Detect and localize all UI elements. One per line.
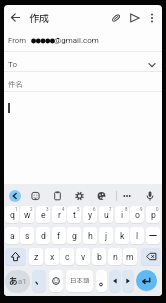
button[interactable] (141, 248, 161, 265)
button[interactable] (136, 270, 157, 291)
staticText: あ (9, 275, 18, 288)
button[interactable]: h (83, 227, 97, 244)
button[interactable] (9, 190, 21, 202)
button[interactable]: e (36, 206, 50, 223)
staticText: 1 (15, 207, 18, 212)
staticText: 日本語 (70, 276, 90, 286)
staticText: f (57, 231, 61, 241)
button[interactable] (146, 11, 158, 25)
button[interactable] (52, 190, 63, 202)
button[interactable]: d (36, 227, 50, 244)
button[interactable] (4, 30, 162, 51)
staticText: x (50, 252, 55, 262)
staticText: 作成 (29, 11, 49, 26)
button[interactable]: n (108, 248, 122, 265)
button[interactable]: v (76, 248, 90, 265)
staticText: 8 (125, 207, 128, 212)
staticText: v (81, 252, 86, 262)
button[interactable] (128, 11, 141, 25)
staticText: c (65, 252, 70, 262)
button[interactable] (145, 58, 159, 72)
button[interactable]: g (67, 227, 81, 244)
staticText: q (10, 210, 15, 220)
button[interactable]: m (123, 248, 137, 265)
staticText: b (97, 252, 102, 262)
staticText: 件名 (8, 79, 23, 90)
button[interactable]: a (5, 227, 19, 244)
staticText: g (72, 231, 77, 241)
button[interactable] (5, 248, 26, 265)
button[interactable]: w (20, 206, 34, 223)
staticText: s (25, 231, 30, 241)
button[interactable] (30, 190, 41, 202)
button[interactable] (122, 270, 134, 292)
button[interactable] (4, 71, 162, 91)
button[interactable]: y (83, 206, 97, 223)
staticText: 9 (140, 207, 143, 212)
button[interactable] (49, 270, 63, 292)
button[interactable]: i (115, 206, 129, 223)
staticText: 2 (30, 207, 33, 212)
staticText: 4 (62, 207, 65, 212)
staticText: To (8, 60, 17, 69)
button[interactable] (8, 10, 23, 25)
staticText: 3 (46, 207, 49, 212)
button[interactable]: q (5, 206, 19, 223)
staticText: 7 (109, 207, 112, 212)
button[interactable] (109, 11, 123, 25)
staticText: w (24, 210, 31, 220)
button[interactable]: f (52, 227, 66, 244)
button[interactable] (74, 190, 85, 202)
button[interactable] (109, 270, 121, 292)
staticText: j (105, 231, 108, 241)
staticText: 0 (156, 207, 159, 212)
staticText: From (8, 36, 27, 45)
button[interactable] (144, 190, 156, 202)
button[interactable]: b (92, 248, 106, 265)
staticText: o (135, 210, 140, 220)
button[interactable] (146, 227, 160, 244)
staticText: d (41, 231, 46, 241)
button[interactable]: x (45, 248, 59, 265)
button[interactable]: s (20, 227, 34, 244)
button[interactable]: u (99, 206, 113, 223)
staticText: n (113, 252, 118, 262)
button[interactable] (4, 91, 162, 184)
staticText: a (10, 231, 15, 241)
button[interactable]: z (29, 248, 43, 265)
button[interactable]: 日本語 (66, 270, 93, 292)
staticText: h (88, 231, 93, 241)
button[interactable] (96, 190, 107, 202)
button[interactable]: k (115, 227, 129, 244)
button[interactable]: r (52, 206, 66, 223)
button[interactable] (4, 51, 162, 71)
button[interactable] (121, 190, 133, 202)
staticText: k (120, 231, 125, 241)
staticText: p (151, 210, 156, 220)
staticText: 6 (93, 207, 96, 212)
button[interactable]: あ (5, 270, 30, 292)
staticText: z (34, 252, 39, 262)
staticText: r (58, 210, 61, 220)
button[interactable]: t (67, 206, 81, 223)
staticText: m (126, 252, 134, 262)
button[interactable]: l (130, 227, 144, 244)
staticText: y (88, 210, 93, 220)
staticText: e (41, 210, 46, 220)
staticText: @gmail.com (54, 36, 99, 45)
staticText: l (136, 231, 139, 241)
staticText: i (121, 210, 124, 220)
staticText: u (104, 210, 109, 220)
button[interactable]: o (130, 206, 144, 223)
staticText: t (73, 210, 76, 220)
staticText: 5 (77, 207, 80, 212)
button[interactable]: c (60, 248, 74, 265)
button[interactable]: j (99, 227, 113, 244)
staticText: a1 (18, 277, 27, 286)
button[interactable] (32, 270, 46, 292)
button[interactable] (96, 270, 107, 292)
button[interactable]: p (146, 206, 160, 223)
